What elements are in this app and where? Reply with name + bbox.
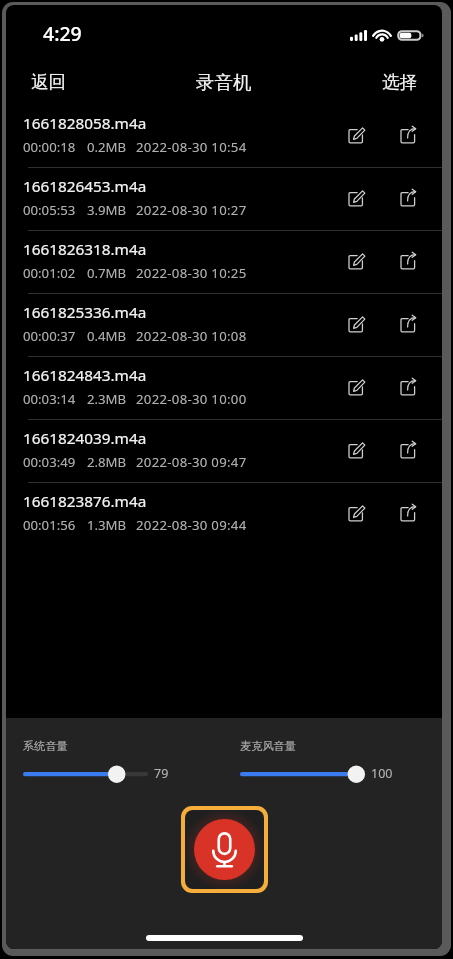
staticText: 00:03:14	[23, 390, 76, 408]
button[interactable]: Share	[388, 178, 430, 220]
staticText: 00:03:49	[23, 453, 76, 471]
staticText: 0.7MB	[87, 264, 127, 282]
button[interactable]: 1661826318.m4a	[6, 231, 442, 293]
staticText: 1661823876.m4a	[23, 491, 147, 512]
button[interactable]: 1661824843.m4a	[6, 357, 442, 419]
staticText: 2022-08-30 09:44	[136, 516, 247, 534]
button[interactable]: Share	[388, 304, 430, 346]
button[interactable]: Rename	[336, 178, 378, 220]
staticText: 录音机	[196, 71, 252, 94]
staticText: 00:01:02	[23, 264, 76, 282]
button[interactable]: Share	[388, 241, 430, 283]
button[interactable]: 1661824039.m4a	[6, 420, 442, 482]
staticText: 2022-08-30 10:27	[136, 201, 247, 219]
staticText: 1661825336.m4a	[23, 302, 147, 323]
button[interactable]: Rename	[336, 304, 378, 346]
button[interactable]: 1661823876.m4a	[6, 483, 442, 545]
button[interactable]: Record	[181, 806, 268, 893]
staticText: 1661824039.m4a	[23, 428, 147, 449]
staticText: 2022-08-30 10:25	[136, 264, 247, 282]
staticText: 2022-08-30 10:54	[136, 138, 247, 156]
staticText: 2.3MB	[87, 390, 127, 408]
staticText: 1661828058.m4a	[23, 113, 147, 134]
staticText: 1661826318.m4a	[23, 239, 147, 260]
button[interactable]: 1661825336.m4a	[6, 294, 442, 356]
button[interactable]: Rename	[336, 493, 378, 535]
staticText: 100	[371, 765, 393, 782]
staticText: 00:01:56	[23, 516, 76, 534]
staticText: 2.8MB	[87, 453, 127, 471]
button[interactable]: Rename	[336, 367, 378, 409]
button[interactable]: Share	[388, 367, 430, 409]
staticText: 1661826453.m4a	[23, 176, 147, 197]
staticText: 4:29	[43, 20, 82, 47]
button[interactable]: 1661826453.m4a	[6, 168, 442, 230]
button[interactable]: 选择	[364, 63, 442, 101]
button[interactable]: 1661828058.m4a	[6, 105, 442, 167]
button[interactable]: Rename	[336, 430, 378, 472]
staticText: 00:00:37	[23, 327, 76, 345]
staticText: 0.2MB	[87, 138, 127, 156]
staticText: 选择	[382, 71, 417, 93]
button[interactable]: Share	[388, 493, 430, 535]
staticText: 00:05:53	[23, 201, 76, 219]
staticText: 1661824843.m4a	[23, 365, 147, 386]
button[interactable]: 返回	[6, 63, 84, 101]
staticText: 2022-08-30 10:08	[136, 327, 247, 345]
button[interactable]: Share	[388, 430, 430, 472]
staticText: 3.9MB	[87, 201, 127, 219]
staticText: 00:00:18	[23, 138, 76, 156]
staticText: 2022-08-30 09:47	[136, 453, 247, 471]
staticText: 系统音量	[23, 739, 68, 753]
staticText: 返回	[31, 71, 66, 93]
button[interactable]: Rename	[336, 115, 378, 157]
button[interactable]: Share	[388, 115, 430, 157]
staticText: 1.3MB	[87, 516, 127, 534]
staticText: 0.4MB	[87, 327, 127, 345]
staticText: 2022-08-30 10:00	[136, 390, 247, 408]
button[interactable]: Rename	[336, 241, 378, 283]
staticText: 麦克风音量	[240, 739, 296, 753]
staticText: 79	[154, 765, 169, 782]
